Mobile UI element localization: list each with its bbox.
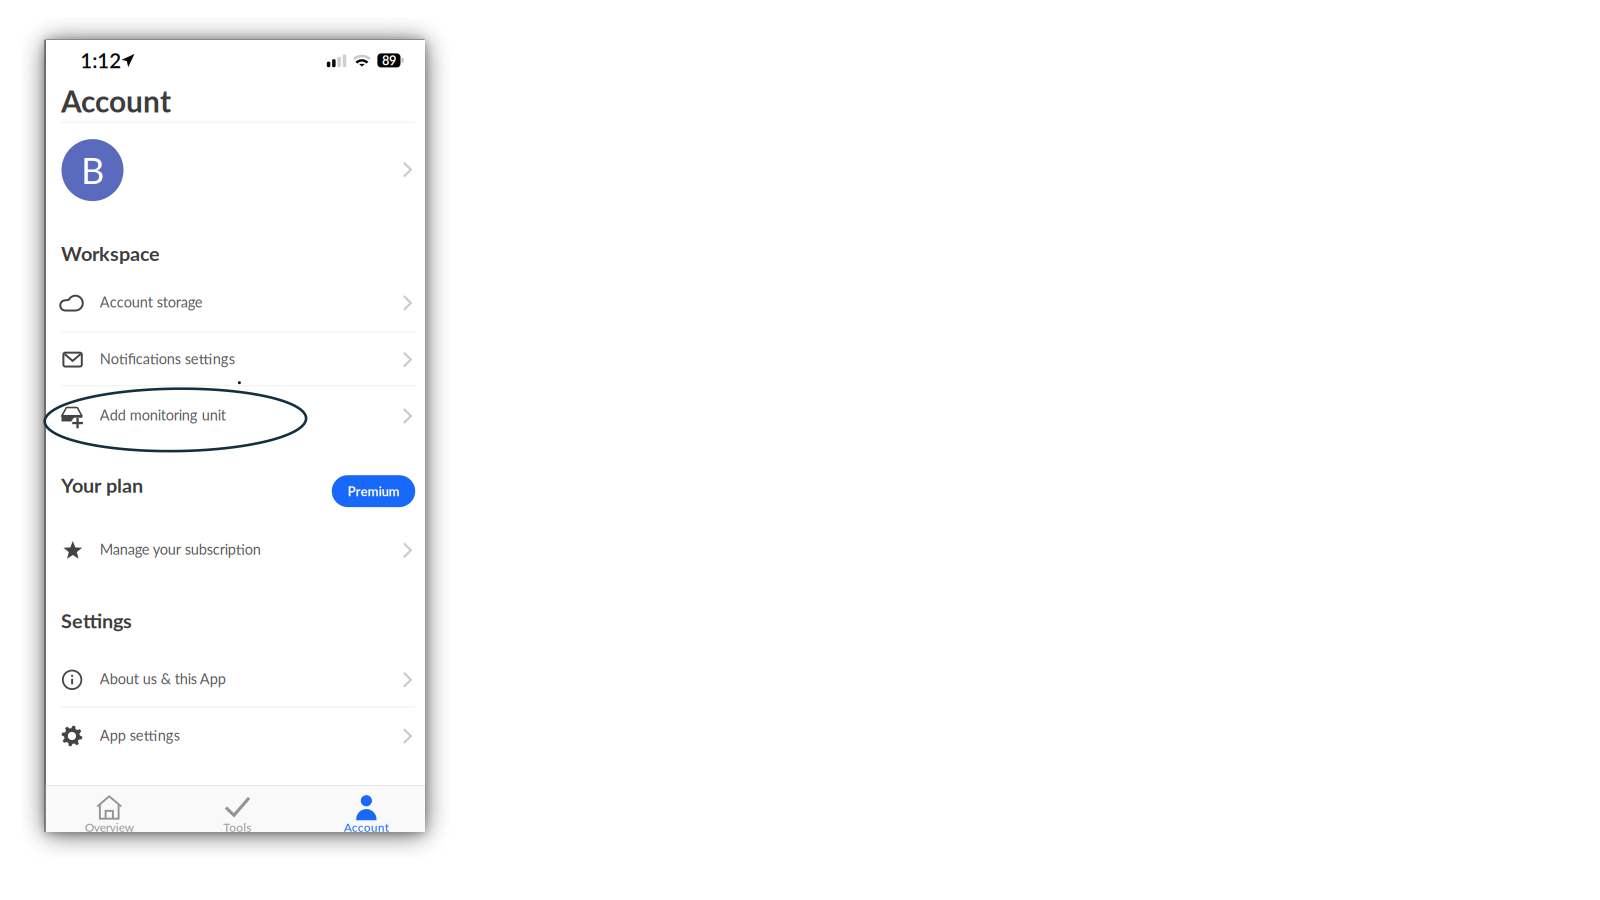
button[interactable]: Account (303, 785, 430, 832)
button[interactable]: App settings (60, 710, 410, 762)
staticText: Account storage (100, 293, 203, 311)
staticText: Premium (347, 483, 399, 499)
staticText: Workspace (61, 241, 160, 265)
staticText: App settings (100, 726, 180, 744)
button[interactable]: Premium (332, 475, 415, 507)
staticText: Tools (223, 820, 251, 834)
staticText: 89 (382, 53, 396, 68)
button[interactable]: Overview (46, 785, 172, 832)
button[interactable]: Add monitoring unit (60, 390, 410, 442)
button[interactable]: Profile (60, 129, 410, 211)
button[interactable]: Tools (174, 785, 301, 832)
staticText: Settings (61, 609, 132, 632)
staticText: Account (344, 820, 389, 834)
staticText: About us & this App (100, 670, 226, 687)
button[interactable]: Notifications settings (60, 334, 410, 386)
staticText: Add monitoring unit (100, 406, 226, 424)
staticText: Account (61, 83, 171, 119)
staticText: 1:12 (80, 48, 121, 73)
button[interactable]: About us & this App (60, 654, 410, 706)
staticText: B (81, 148, 104, 192)
staticText: Notifications settings (100, 350, 235, 367)
staticText: Your plan (61, 473, 143, 497)
staticText: Overview (85, 820, 134, 834)
button[interactable]: Manage your subscription (60, 524, 410, 576)
button[interactable]: Account storage (60, 277, 410, 329)
staticText: Manage your subscription (100, 540, 261, 558)
